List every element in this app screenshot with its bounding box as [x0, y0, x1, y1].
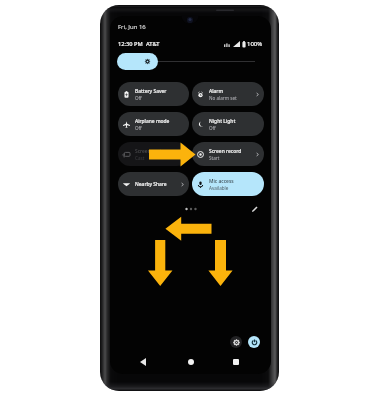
staticText: 12:30 PM — [118, 40, 143, 48]
button[interactable]: Battery Saver — [118, 82, 189, 106]
staticText: Nearby Share — [135, 181, 167, 188]
staticText: Off — [209, 125, 216, 131]
staticText: Cast — [135, 155, 145, 161]
button[interactable]: Night Light — [192, 112, 264, 136]
button[interactable]: Airplane mode — [118, 112, 189, 136]
button[interactable]: Power — [248, 336, 260, 348]
button[interactable]: Mic access — [192, 172, 264, 196]
button[interactable]: Brightness — [117, 53, 262, 70]
button[interactable]: Settings — [230, 336, 242, 348]
staticText: Screen cast — [135, 148, 162, 155]
staticText: Off — [135, 125, 142, 131]
staticText: Screen record — [209, 148, 242, 155]
button[interactable]: Home — [184, 355, 198, 369]
staticText: Alarm — [209, 88, 224, 95]
button[interactable]: Alarm — [192, 82, 264, 106]
button[interactable]: Edit tiles — [249, 204, 259, 214]
staticText: AT&T — [146, 40, 160, 48]
button[interactable]: Back — [136, 355, 150, 369]
staticText: Mic access — [209, 178, 234, 185]
staticText: Available — [209, 185, 229, 191]
staticText: Off — [135, 95, 142, 101]
button[interactable]: Screen cast — [118, 142, 189, 166]
button[interactable]: Nearby Share — [118, 172, 189, 196]
staticText: Battery Saver — [135, 88, 167, 95]
staticText: 100% — [247, 40, 263, 48]
button[interactable]: Recents — [229, 355, 243, 369]
staticText: Fri, Jun 16 — [118, 23, 146, 31]
staticText: No alarm set — [209, 95, 237, 101]
staticText: Night Light — [209, 118, 236, 125]
staticText: Start — [209, 155, 220, 161]
staticText: Airplane mode — [135, 118, 170, 125]
button[interactable]: Screen record — [192, 142, 264, 166]
